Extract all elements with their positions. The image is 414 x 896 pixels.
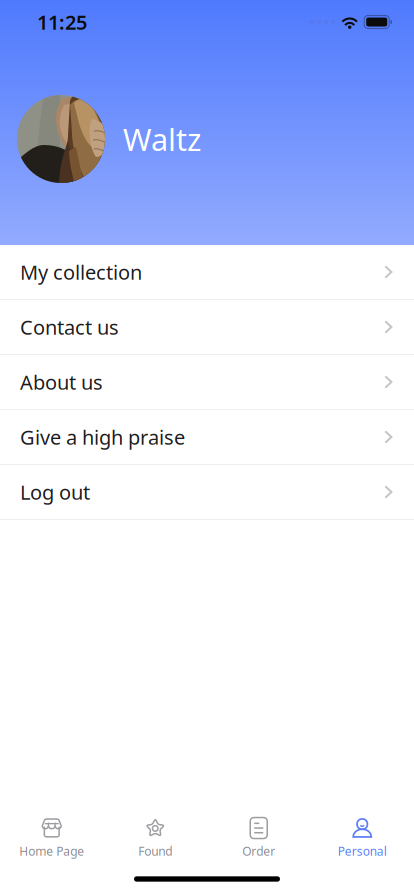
button[interactable]: Home Page xyxy=(0,805,103,863)
staticText: Order xyxy=(242,843,275,859)
staticText: Home Page xyxy=(19,843,84,859)
button[interactable]: Log out xyxy=(0,465,414,520)
button[interactable]: My collection xyxy=(0,245,414,300)
staticText: 11:25 xyxy=(37,9,87,35)
button[interactable]: Give a high praise xyxy=(0,410,414,465)
button[interactable]: About us xyxy=(0,355,414,410)
button[interactable]: Order xyxy=(207,805,310,863)
staticText: About us xyxy=(20,369,103,395)
staticText: Found xyxy=(138,843,172,859)
staticText: Personal xyxy=(338,843,387,859)
staticText: Log out xyxy=(20,479,90,505)
button[interactable]: Personal xyxy=(310,805,414,863)
staticText: Contact us xyxy=(20,314,119,340)
staticText: Give a high praise xyxy=(20,424,185,450)
button[interactable]: Contact us xyxy=(0,300,414,355)
staticText: My collection xyxy=(20,259,142,285)
button[interactable]: Found xyxy=(103,805,207,863)
staticText: Waltz xyxy=(123,119,201,159)
